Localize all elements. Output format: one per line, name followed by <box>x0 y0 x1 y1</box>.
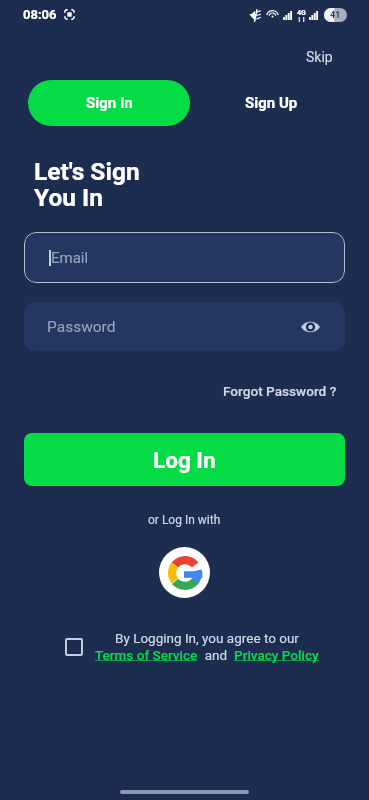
button[interactable]: Forgot Password ? <box>211 378 349 404</box>
staticText: Sign In <box>86 94 133 112</box>
staticText: Email <box>51 249 89 267</box>
button[interactable]: Email <box>24 232 345 283</box>
button[interactable]: Show password <box>296 313 324 341</box>
button[interactable]: Agree to terms and conditions <box>65 638 83 656</box>
button[interactable]: Password <box>24 302 345 351</box>
staticText: 4G <box>297 9 306 17</box>
staticText: Terms of Service <box>95 647 198 663</box>
staticText: or Log In with <box>148 513 221 527</box>
button[interactable]: Skip <box>294 44 345 70</box>
staticText: and <box>198 647 234 663</box>
staticText: Privacy Policy <box>234 647 319 663</box>
staticText: Let's Sign You In <box>34 157 140 212</box>
button[interactable]: Sign Up <box>227 80 316 126</box>
staticText: By Logging In, you agree to our <box>115 630 299 646</box>
staticText: 41 <box>330 10 341 21</box>
button[interactable]: Sign In <box>28 80 190 126</box>
staticText: Forgot Password ? <box>223 383 337 399</box>
staticText: Log In <box>153 447 216 473</box>
staticText: Skip <box>306 49 333 65</box>
button[interactable]: Terms of Service <box>95 647 198 663</box>
staticText: Sign Up <box>245 94 298 112</box>
staticText: Password <box>47 318 116 336</box>
button[interactable]: Sign in with Google <box>159 547 210 598</box>
staticText: 08:06 <box>23 7 57 22</box>
button[interactable]: Privacy Policy <box>234 647 319 663</box>
button[interactable]: Log In <box>24 433 345 486</box>
